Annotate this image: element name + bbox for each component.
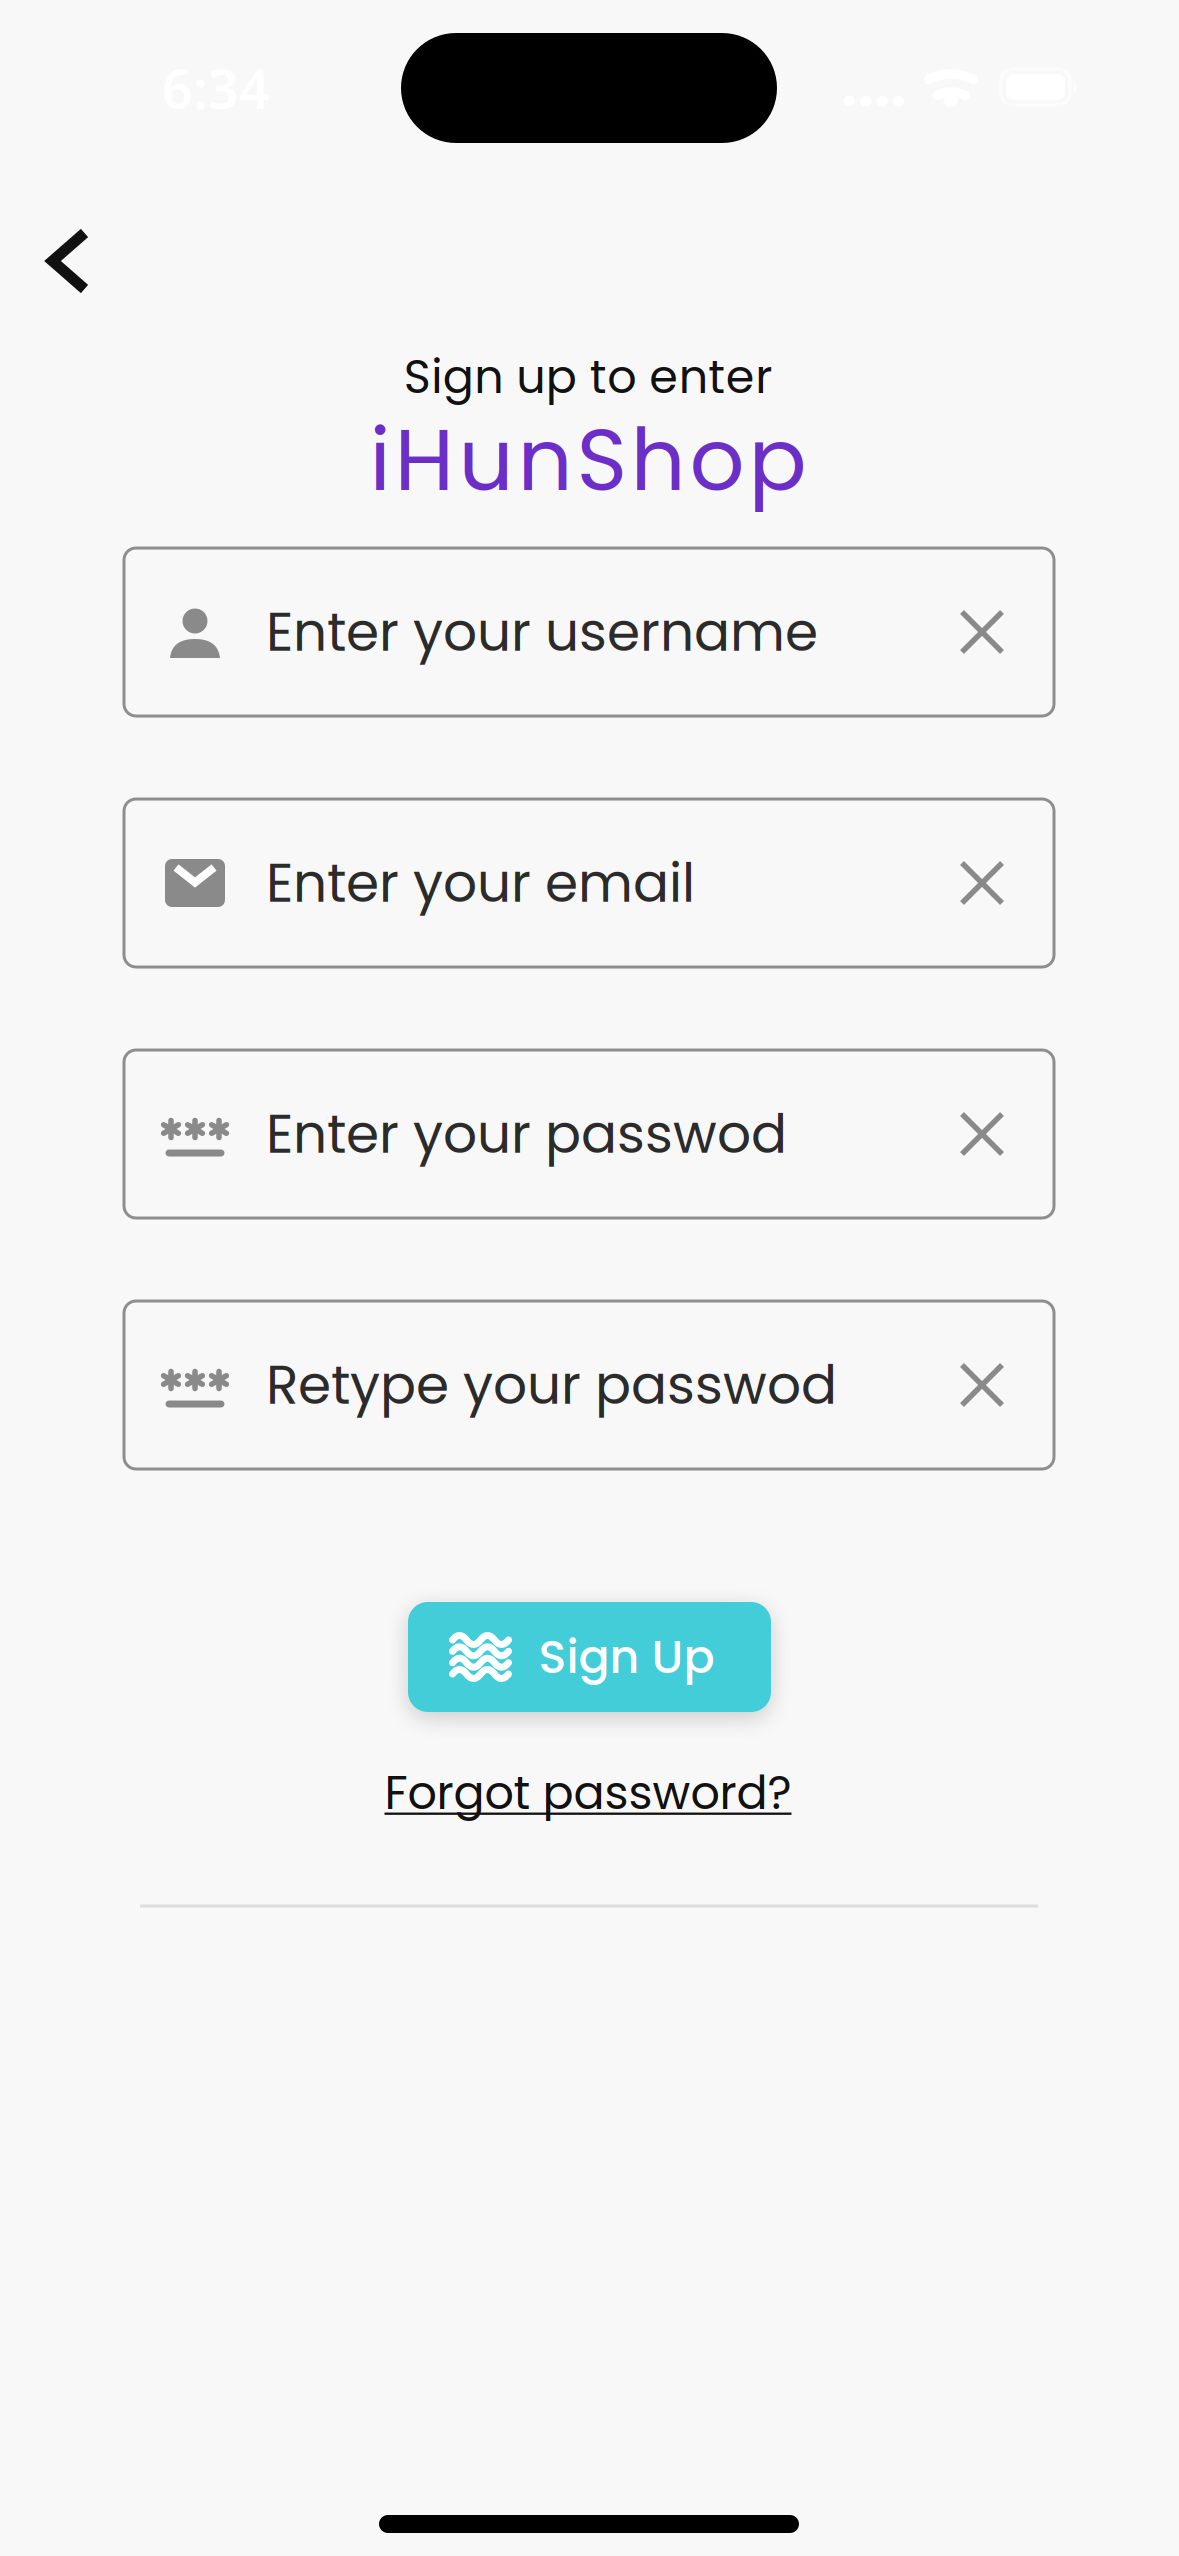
staticText: Enter your email — [266, 846, 695, 920]
button[interactable]: Forgot password? — [384, 1761, 791, 1825]
staticText: Sign up to enter — [404, 345, 772, 409]
button[interactable]: Sign Up — [408, 1602, 771, 1712]
staticText: Retype your passwod — [266, 1348, 837, 1422]
staticText: Enter your username — [266, 595, 818, 669]
button[interactable]: Back — [36, 217, 100, 305]
button[interactable]: Clear text — [932, 1084, 1032, 1184]
button[interactable]: Clear text — [932, 582, 1032, 682]
staticText: Sign Up — [538, 1625, 714, 1689]
staticText: Forgot password? — [384, 1761, 791, 1825]
staticText: iHunShop — [369, 400, 806, 520]
button[interactable]: Clear text — [932, 833, 1032, 933]
staticText: Enter your passwod — [266, 1097, 787, 1171]
button[interactable]: Clear text — [932, 1335, 1032, 1435]
